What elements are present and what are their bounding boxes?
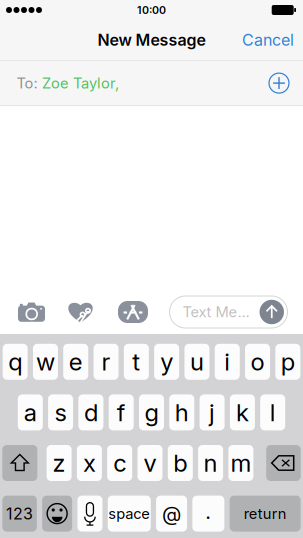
staticText: l	[270, 398, 276, 427]
button[interactable]: Delete	[266, 445, 301, 481]
button[interactable]: d	[78, 394, 103, 430]
staticText: return	[244, 505, 287, 522]
button[interactable]: Text Me...	[169, 296, 287, 328]
button[interactable]: Add contact	[268, 73, 289, 94]
button[interactable]: z	[47, 445, 72, 481]
button[interactable]: t	[124, 344, 149, 380]
button[interactable]: 123	[2, 496, 37, 532]
button[interactable]: Camera	[18, 302, 45, 322]
staticText: s	[55, 398, 67, 427]
button[interactable]: Emoji	[42, 496, 72, 532]
staticText: w	[36, 347, 55, 376]
button[interactable]: u	[184, 344, 209, 380]
button[interactable]: h	[169, 394, 194, 430]
staticText: .	[205, 499, 211, 524]
button[interactable]: e	[63, 344, 88, 380]
button[interactable]: v	[137, 445, 162, 481]
staticText: m	[230, 448, 251, 477]
staticText: o	[251, 347, 265, 376]
button[interactable]: s	[48, 394, 73, 430]
staticText: New Message	[97, 30, 205, 50]
button[interactable]: y	[154, 344, 179, 380]
staticText: space	[108, 505, 150, 522]
button[interactable]: m	[228, 445, 253, 481]
button[interactable]: return	[230, 496, 301, 532]
staticText: Text Me...	[182, 303, 249, 321]
button[interactable]: Apps	[118, 301, 148, 323]
staticText: v	[143, 448, 156, 477]
staticText: To:	[16, 74, 37, 92]
staticText: Cancel	[242, 30, 294, 50]
staticText: 10:00	[137, 3, 166, 16]
button[interactable]: Cancel	[238, 20, 298, 60]
button[interactable]: w	[33, 344, 58, 380]
button[interactable]: Shift	[2, 445, 37, 481]
button[interactable]: q	[3, 344, 28, 380]
button[interactable]: a	[18, 394, 43, 430]
button[interactable]: n	[198, 445, 223, 481]
staticText: u	[190, 347, 204, 376]
button[interactable]: g	[139, 394, 164, 430]
button[interactable]: b	[168, 445, 193, 481]
staticText: n	[204, 448, 218, 477]
button[interactable]: x	[77, 445, 102, 481]
button[interactable]: i	[215, 344, 240, 380]
staticText: g	[144, 398, 158, 427]
staticText: k	[236, 398, 249, 427]
staticText: z	[53, 448, 66, 477]
staticText: f	[117, 398, 126, 427]
button[interactable]: c	[107, 445, 132, 481]
staticText: d	[84, 398, 98, 427]
button[interactable]: @	[156, 496, 187, 532]
button[interactable]: f	[109, 394, 134, 430]
button[interactable]: Digital Touch	[68, 301, 93, 323]
staticText: p	[281, 347, 295, 376]
staticText: y	[160, 347, 173, 376]
staticText: r	[102, 347, 111, 376]
staticText: @	[162, 501, 181, 526]
staticText: e	[69, 347, 83, 376]
staticText: h	[175, 398, 189, 427]
staticText: b	[173, 448, 187, 477]
button[interactable]: Dictation	[77, 496, 102, 532]
staticText: i	[224, 347, 230, 376]
staticText: Zoe Taylor,	[42, 74, 119, 92]
staticText: q	[8, 347, 22, 376]
button[interactable]: j	[200, 394, 225, 430]
button[interactable]: .	[192, 496, 224, 532]
button[interactable]: l	[260, 394, 285, 430]
staticText: 123	[6, 504, 33, 523]
button[interactable]: p	[275, 344, 300, 380]
staticText: x	[83, 448, 96, 477]
staticText: c	[113, 448, 126, 477]
staticText: j	[209, 398, 215, 427]
button[interactable]: o	[245, 344, 270, 380]
button[interactable]: r	[94, 344, 119, 380]
button[interactable]: k	[230, 394, 255, 430]
staticText: t	[132, 347, 140, 376]
button[interactable]: space	[108, 496, 151, 532]
staticText: a	[24, 398, 37, 427]
